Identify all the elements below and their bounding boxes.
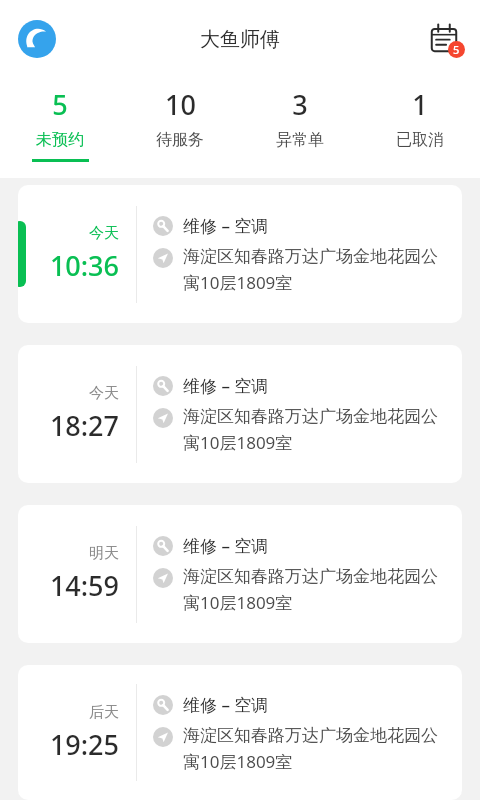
staticText: 明天: [89, 544, 119, 563]
staticText: 18:27: [49, 407, 119, 444]
button[interactable]: 今天: [18, 185, 462, 323]
staticText: 未预约: [36, 130, 84, 150]
staticText: 维修 – 空调: [183, 214, 269, 237]
button[interactable]: 5: [0, 78, 120, 178]
staticText: 10:36: [49, 247, 119, 284]
staticText: 维修 – 空调: [183, 534, 269, 557]
staticText: 海淀区知春路万达广场金地花园公寓10层1809室: [183, 566, 450, 614]
staticText: 19:25: [49, 726, 119, 763]
button[interactable]: 10: [120, 78, 240, 178]
staticText: 5: [52, 86, 68, 123]
staticText: 大鱼师傅: [200, 27, 280, 52]
staticText: 今天: [89, 384, 119, 403]
staticText: 维修 – 空调: [183, 693, 269, 716]
staticText: 10: [165, 86, 196, 123]
staticText: 待服务: [156, 130, 204, 150]
staticText: 5: [453, 42, 460, 57]
staticText: 海淀区知春路万达广场金地花园公寓10层1809室: [183, 725, 450, 773]
button[interactable]: 1: [360, 78, 480, 178]
staticText: 异常单: [276, 130, 324, 150]
staticText: 维修 – 空调: [183, 374, 269, 397]
staticText: 已取消: [396, 130, 444, 150]
staticText: 3: [292, 86, 308, 123]
staticText: 14:59: [49, 567, 119, 604]
button[interactable]: 今天: [18, 345, 462, 483]
button[interactable]: Schedule: [422, 17, 466, 61]
button[interactable]: 3: [240, 78, 360, 178]
button[interactable]: Profile: [16, 18, 58, 60]
staticText: 海淀区知春路万达广场金地花园公寓10层1809室: [183, 246, 450, 294]
staticText: 海淀区知春路万达广场金地花园公寓10层1809室: [183, 406, 450, 454]
button[interactable]: 明天: [18, 505, 462, 643]
staticText: 后天: [89, 703, 119, 722]
button[interactable]: 后天: [18, 665, 462, 800]
staticText: 1: [412, 86, 428, 123]
staticText: 今天: [89, 224, 119, 243]
